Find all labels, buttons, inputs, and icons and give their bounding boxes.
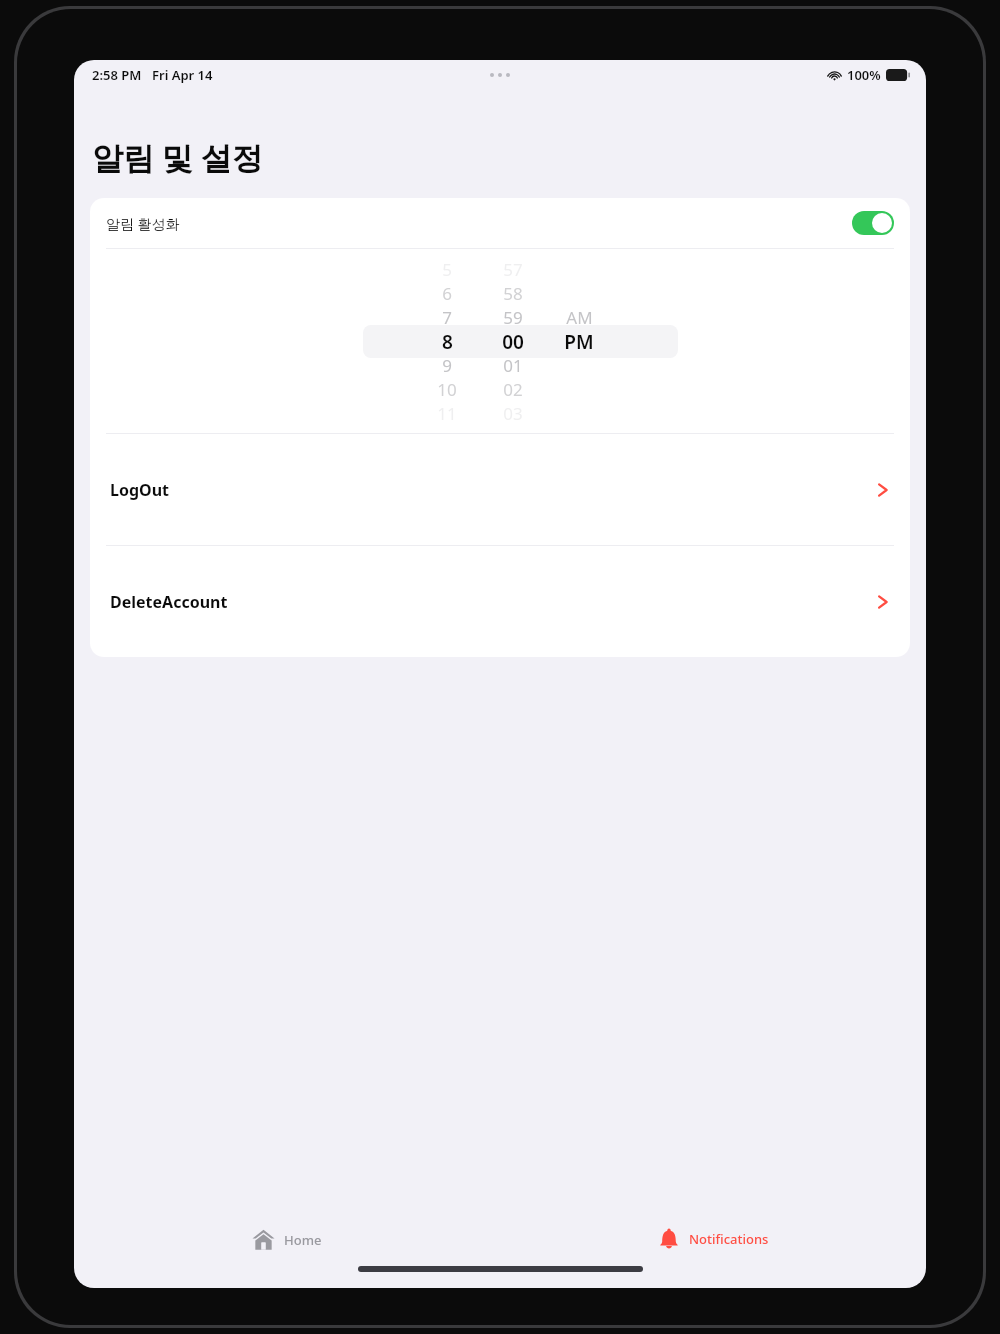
staticText: 59	[503, 306, 523, 329]
button[interactable]: LogOut	[90, 434, 910, 545]
other: Open	[876, 480, 890, 500]
button[interactable]: Enable notifications	[852, 211, 894, 235]
staticText: 알림 활성화	[106, 214, 180, 233]
staticText: 8	[442, 329, 453, 353]
staticText: Notifications	[689, 1230, 769, 1248]
staticText: 02	[503, 378, 523, 401]
button[interactable]: Home	[74, 1216, 500, 1262]
button[interactable]: DeleteAccount	[90, 546, 910, 657]
staticText: 11	[437, 402, 457, 425]
staticText: 01	[503, 354, 523, 377]
staticText: 10	[437, 378, 457, 401]
staticText: 2:58 PM	[92, 66, 142, 84]
staticText: 03	[503, 402, 523, 425]
staticText: 알림 및 설정	[92, 136, 264, 178]
button[interactable]: Time picker column	[480, 257, 546, 425]
staticText: 9	[442, 354, 452, 377]
staticText: AM	[566, 306, 593, 329]
staticText: DeleteAccount	[110, 591, 228, 613]
staticText: 57	[503, 258, 523, 281]
staticText: 00	[502, 329, 524, 353]
staticText: 5	[442, 258, 452, 281]
other: Notifications	[658, 1228, 680, 1250]
button[interactable]: Time picker column	[414, 257, 480, 425]
staticText: PM	[564, 329, 594, 353]
button[interactable]: 알림 활성화	[90, 198, 910, 248]
staticText: 6	[442, 282, 452, 305]
staticText: 7	[442, 306, 452, 329]
staticText: 100%	[847, 66, 881, 84]
button[interactable]: Notifications	[500, 1216, 926, 1262]
staticText: LogOut	[110, 479, 170, 501]
other: Open	[876, 592, 890, 612]
staticText: Fri Apr 14	[152, 66, 213, 84]
staticText: Home	[284, 1231, 322, 1249]
other: Home	[252, 1228, 275, 1251]
button[interactable]: Time picker column	[546, 257, 612, 425]
staticText: 58	[503, 282, 523, 305]
